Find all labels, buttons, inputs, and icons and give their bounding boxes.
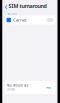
staticText: detail <box>7 88 15 91</box>
button[interactable]: Back <box>4 0 7 12</box>
staticText: You should see <box>7 84 29 87</box>
staticText: ‹ <box>4 0 7 12</box>
staticText: Next <box>46 86 51 89</box>
staticText: SIM turnaround <box>8 2 46 10</box>
staticText: Carrier <box>13 17 27 23</box>
button[interactable]: Next <box>44 85 53 90</box>
staticText: ACTIVE <box>7 12 16 15</box>
